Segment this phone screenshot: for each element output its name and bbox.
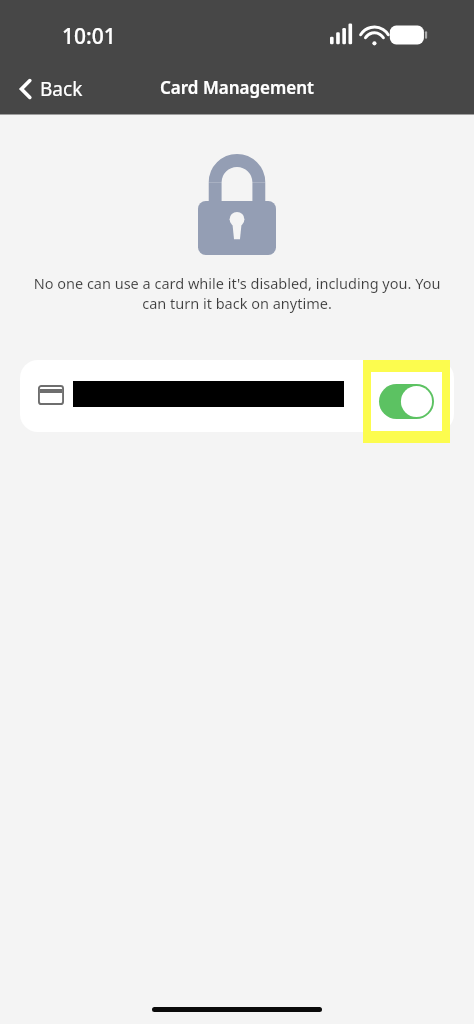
staticText: Back	[40, 76, 83, 102]
button[interactable]: Back	[12, 72, 91, 106]
staticText: No one can use a card while it's disable…	[26, 273, 448, 314]
staticText: 10:01	[62, 22, 116, 51]
staticText: Card Management	[160, 76, 315, 99]
button[interactable]: Card enabled toggle	[363, 360, 450, 443]
button[interactable]	[20, 360, 454, 432]
